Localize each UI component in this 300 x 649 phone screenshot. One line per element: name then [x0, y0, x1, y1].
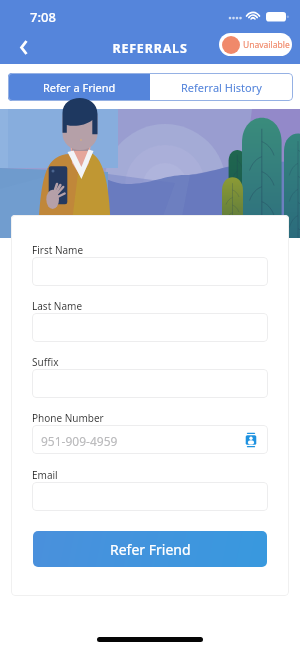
button[interactable]	[32, 257, 268, 286]
staticText: First Name	[32, 243, 84, 257]
button[interactable]	[32, 369, 268, 398]
staticText: REFERRALS	[0, 40, 300, 57]
button[interactable]: Refer a Friend	[8, 73, 150, 101]
button[interactable]	[32, 313, 268, 342]
button[interactable]: Pick contact	[243, 432, 259, 448]
button[interactable]: Back	[8, 32, 38, 62]
staticText: 951-909-4959	[41, 433, 118, 449]
button[interactable]: Refer Friend	[33, 531, 267, 567]
button[interactable]: 951-909-4959	[32, 425, 268, 454]
button[interactable]: Referral History	[150, 73, 293, 101]
staticText: Email	[32, 468, 58, 482]
button[interactable]	[32, 482, 268, 511]
staticText: Last Name	[32, 299, 83, 313]
staticText: Phone Number	[32, 411, 104, 425]
staticText: Referral History	[181, 80, 262, 95]
staticText: Unavailable	[243, 39, 290, 51]
staticText: Refer Friend	[110, 540, 191, 559]
button[interactable]: Unavailable	[219, 33, 292, 56]
staticText: 7:08	[30, 8, 56, 26]
staticText: Suffix	[32, 355, 59, 369]
staticText: Refer a Friend	[43, 80, 116, 95]
